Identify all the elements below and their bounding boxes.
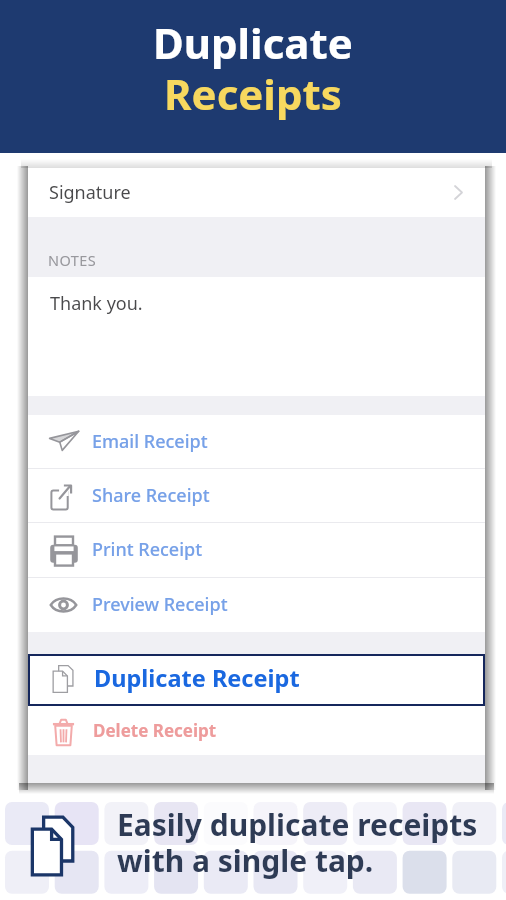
button[interactable]: Duplicate Receipt <box>28 654 485 706</box>
staticText: Easily duplicate receipts with a single … <box>117 804 478 880</box>
button[interactable]: Print Receipt <box>28 523 485 578</box>
staticText: Print Receipt <box>92 537 203 562</box>
staticText: Duplicate <box>153 14 353 71</box>
staticText: Email Receipt <box>92 429 208 454</box>
staticText: Delete Receipt <box>93 719 217 742</box>
button[interactable]: Share Receipt <box>28 469 485 523</box>
button[interactable]: Email Receipt <box>28 415 485 469</box>
other: Duplicate <box>30 816 77 876</box>
staticText: Signature <box>49 180 131 205</box>
staticText: Share Receipt <box>92 483 210 508</box>
staticText: Receipts <box>164 65 342 122</box>
staticText: Thank you. <box>50 291 143 316</box>
staticText: NOTES <box>48 250 96 270</box>
staticText: Duplicate Receipt <box>94 662 300 694</box>
staticText: Preview Receipt <box>92 592 228 617</box>
button[interactable]: Preview Receipt <box>28 578 485 632</box>
button[interactable]: Delete Receipt <box>28 706 485 755</box>
button[interactable]: Signature <box>28 168 485 217</box>
